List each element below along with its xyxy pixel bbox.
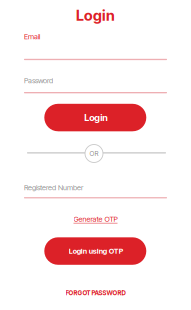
staticText: Generate OTP	[73, 215, 117, 223]
button[interactable]: Generate OTP	[24, 214, 167, 224]
button[interactable]: Login using OTP	[44, 237, 146, 265]
staticText: Registered Number	[24, 183, 83, 192]
staticText: Email	[24, 32, 40, 41]
staticText: FORGOT PASSWORD	[65, 289, 125, 297]
staticText: OR	[89, 149, 98, 158]
button[interactable]: Login	[44, 104, 146, 131]
staticText: Login	[84, 112, 108, 123]
staticText: Login using OTP	[69, 247, 124, 255]
button[interactable]: FORGOT PASSWORD	[24, 289, 167, 297]
staticText: Login	[76, 7, 115, 24]
staticText: Password	[24, 76, 53, 85]
